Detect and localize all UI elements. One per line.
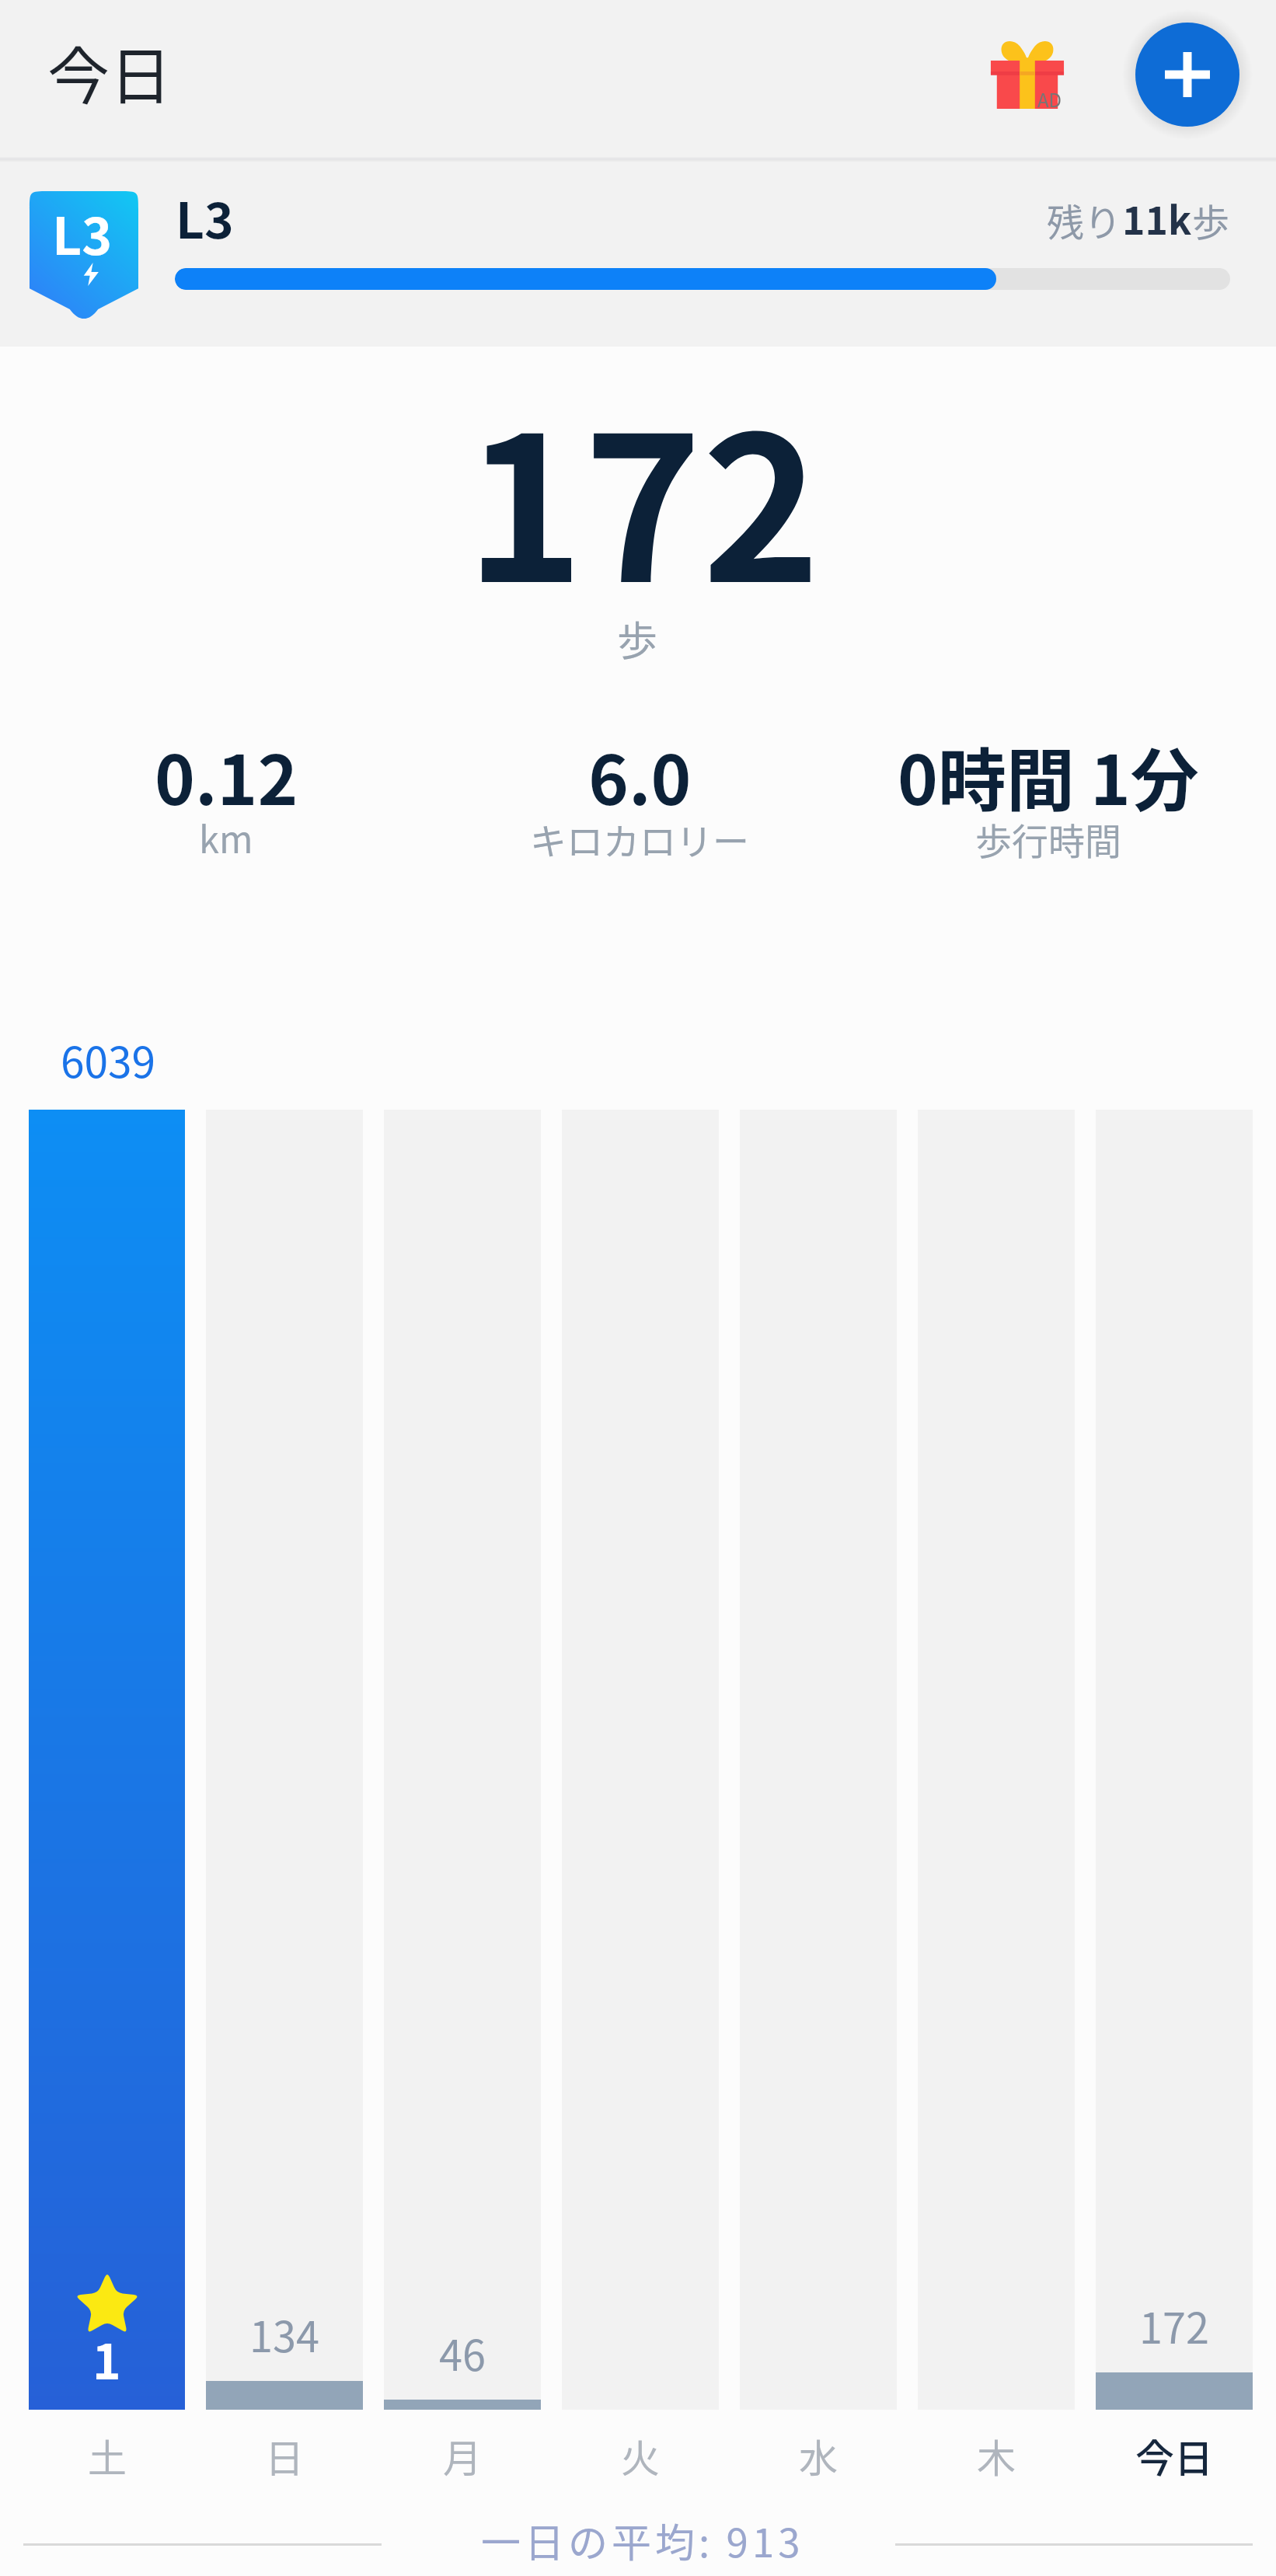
staticText: 歩 bbox=[617, 609, 658, 668]
button[interactable]: 日 bbox=[206, 2414, 363, 2497]
staticText: km bbox=[199, 810, 253, 863]
staticText: 172 bbox=[1139, 2295, 1209, 2355]
staticText: 0.12 bbox=[155, 726, 298, 824]
staticText: 土 bbox=[88, 2428, 127, 2484]
staticText: 火 bbox=[621, 2428, 660, 2484]
staticText: キロカロリー bbox=[530, 812, 749, 865]
button[interactable]: 134 bbox=[206, 1110, 363, 2410]
staticText: 歩 bbox=[1192, 193, 1230, 247]
staticText: L3 bbox=[52, 195, 113, 270]
button[interactable]: 土 bbox=[29, 2414, 185, 2497]
button[interactable]: 1 bbox=[29, 1110, 185, 2410]
staticText: 1 bbox=[92, 2323, 121, 2393]
button[interactable]: 水 bbox=[740, 2414, 897, 2497]
button[interactable]: Rewards ad bbox=[978, 23, 1076, 121]
staticText: 6.0 bbox=[588, 726, 692, 824]
staticText: 残り bbox=[1047, 193, 1122, 247]
staticText: L3 bbox=[176, 181, 234, 253]
staticText: 172 bbox=[465, 350, 821, 640]
staticText: 月 bbox=[443, 2428, 482, 2484]
staticText: 水 bbox=[799, 2428, 838, 2484]
staticText: 11k bbox=[1122, 190, 1192, 246]
button[interactable]: 火 bbox=[562, 2414, 719, 2497]
button[interactable]: 木 bbox=[918, 2414, 1075, 2497]
button[interactable]: 今日 bbox=[1096, 2414, 1253, 2497]
button[interactable]: Add bbox=[1135, 23, 1239, 127]
staticText: 134 bbox=[249, 2303, 319, 2364]
staticText: 6039 bbox=[61, 1028, 156, 1090]
staticText: 今日 bbox=[47, 26, 172, 117]
staticText: 46 bbox=[439, 2322, 486, 2383]
button[interactable]: 月 bbox=[384, 2414, 541, 2497]
staticText: 一日の平均: 913 bbox=[481, 2512, 804, 2569]
staticText: 歩行時間 bbox=[975, 812, 1121, 865]
staticText: 今日 bbox=[1135, 2428, 1213, 2484]
staticText: AD bbox=[1037, 85, 1062, 113]
button[interactable]: 172 bbox=[1096, 1110, 1253, 2410]
staticText: 日 bbox=[265, 2428, 304, 2484]
button[interactable]: 46 bbox=[384, 1110, 541, 2410]
staticText: 0時間 1分 bbox=[898, 726, 1199, 824]
staticText: 木 bbox=[977, 2428, 1016, 2484]
